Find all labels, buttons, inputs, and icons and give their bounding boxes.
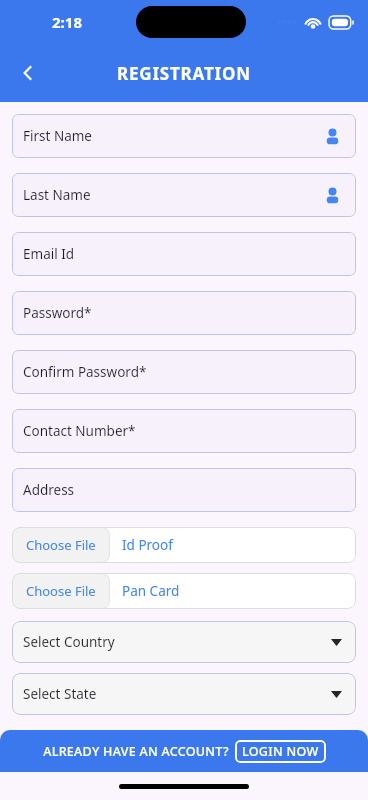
staticText: First Name bbox=[23, 127, 92, 145]
staticText: Pan Card bbox=[122, 582, 180, 600]
button[interactable]: Choose File bbox=[12, 527, 110, 563]
staticText: Choose File bbox=[26, 582, 96, 600]
staticText: Choose File bbox=[26, 536, 96, 554]
button[interactable]: Contact Number* bbox=[12, 409, 356, 453]
staticText: Id Proof bbox=[122, 536, 173, 554]
button[interactable]: Confirm Password* bbox=[12, 350, 356, 394]
staticText: Select Country bbox=[23, 633, 115, 651]
button[interactable]: Password* bbox=[12, 291, 356, 335]
staticText: ALREADY HAVE AN ACCOUNT? bbox=[43, 743, 229, 760]
staticText: LOGIN NOW bbox=[242, 743, 319, 760]
staticText: Address bbox=[23, 481, 75, 499]
staticText: Email Id bbox=[23, 245, 75, 263]
button[interactable]: Back bbox=[8, 53, 48, 93]
staticText: Last Name bbox=[23, 186, 91, 204]
button[interactable]: Choose File bbox=[12, 573, 110, 609]
staticText: Confirm Password* bbox=[23, 363, 147, 381]
button[interactable]: ALREADY HAVE AN ACCOUNT? bbox=[0, 730, 368, 772]
button[interactable]: Last Name bbox=[12, 173, 356, 217]
button[interactable]: Select State bbox=[12, 673, 356, 715]
button[interactable]: Address bbox=[12, 468, 356, 512]
staticText: Password* bbox=[23, 304, 92, 322]
staticText: Contact Number* bbox=[23, 422, 136, 440]
staticText: REGISTRATION bbox=[117, 62, 251, 85]
staticText: Select State bbox=[23, 685, 97, 703]
button[interactable]: Select Country bbox=[12, 621, 356, 663]
button[interactable]: LOGIN NOW bbox=[242, 743, 319, 760]
staticText: 2:18 bbox=[52, 12, 82, 32]
button[interactable]: First Name bbox=[12, 114, 356, 158]
button[interactable]: Email Id bbox=[12, 232, 356, 276]
